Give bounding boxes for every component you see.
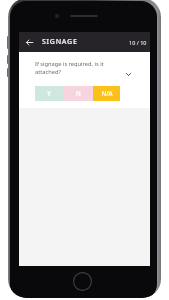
staticText: If signage is required, is it attached? bbox=[35, 60, 107, 76]
button[interactable]: N/A bbox=[93, 86, 120, 101]
staticText: SIGNAGE bbox=[42, 37, 78, 47]
staticText: N/A bbox=[101, 89, 113, 98]
button[interactable]: Back bbox=[22, 35, 36, 49]
staticText: Y bbox=[47, 89, 51, 98]
staticText: 10 / 10 bbox=[129, 39, 147, 46]
button[interactable]: N bbox=[63, 86, 93, 101]
button[interactable]: Y bbox=[35, 86, 63, 101]
staticText: N bbox=[76, 89, 81, 98]
button[interactable]: Expand question bbox=[120, 66, 136, 82]
